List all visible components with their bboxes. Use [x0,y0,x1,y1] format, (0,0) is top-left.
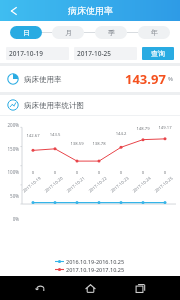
staticText: 2017-10-25 [154,176,174,194]
staticText: 2017-10-21 [66,176,86,194]
staticText: 138.59 [68,141,86,147]
staticText: 0 [140,170,146,176]
staticText: 月 [65,28,72,37]
staticText: 50% [3,193,19,199]
staticText: 0 [162,170,168,176]
staticText: 日 [23,28,30,37]
staticText: 0 [52,170,58,176]
staticText: 0 [118,170,124,176]
staticText: 查询 [151,49,165,58]
button[interactable]: 月 [52,26,84,39]
staticText: 148.79 [134,126,152,132]
staticText: 病床使用率统计图 [24,101,84,110]
staticText: 138.78 [90,141,108,147]
staticText: 2016.10.19-2016.10.25 [66,258,125,265]
button[interactable]: 年 [138,26,170,39]
staticText: 0 [74,170,80,176]
staticText: 2017-10-23 [110,176,130,194]
staticText: 2017-10-20 [44,176,64,194]
button[interactable]: 日 [10,26,42,39]
staticText: 季 [108,28,115,37]
staticText: 病床使用率 [68,5,113,16]
staticText: 149.17 [156,125,174,131]
staticText: 2017-10-24 [132,176,152,194]
button[interactable]: 2017-10-19 [6,47,69,60]
staticText: 2017-10-22 [88,176,108,194]
staticText: 年 [151,28,158,37]
button[interactable]: 查询 [142,47,174,60]
staticText: 2017-10-25 [77,49,111,58]
staticText: 143.97 [125,70,166,88]
staticText: % [168,75,173,83]
button[interactable]: Recents [130,278,150,298]
button[interactable]: Back [30,278,50,298]
staticText: 144.2 [112,131,130,137]
staticText: 200% [3,122,19,128]
button[interactable]: 2017-10-25 [74,47,137,60]
button[interactable]: 病床使用率 [7,66,173,92]
button[interactable]: Back [4,3,20,19]
staticText: 2017-10-19 [9,49,43,58]
staticText: 143.5 [46,132,64,138]
staticText: 0 [30,170,36,176]
button[interactable]: 季 [95,26,127,39]
staticText: 0% [3,216,19,222]
staticText: 0 [96,170,102,176]
staticText: 142.67 [24,133,42,139]
staticText: 2017-10-19 [22,176,42,194]
staticText: 100% [3,169,19,175]
button[interactable]: Home [80,278,100,298]
staticText: 病床使用率 [24,75,62,84]
staticText: 150% [3,146,19,152]
staticText: 2017.10.19-2017.10.25 [66,266,125,273]
